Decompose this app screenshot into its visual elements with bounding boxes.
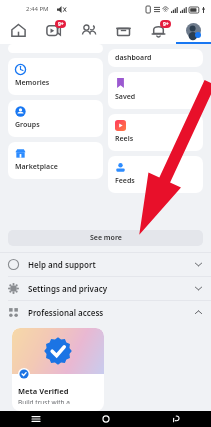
button[interactable]: Friends	[71, 18, 106, 44]
staticText: Groups	[15, 120, 40, 130]
button[interactable]: Home	[71, 411, 141, 427]
button[interactable]: Feeds	[108, 156, 203, 193]
button[interactable]: Marketplace	[8, 142, 103, 179]
staticText: Memories	[15, 78, 50, 88]
staticText: 2:44 PM	[26, 5, 49, 13]
staticText: 9+	[163, 21, 169, 28]
staticText: 9+	[58, 21, 64, 28]
button[interactable]: Meta Verified	[12, 328, 104, 411]
staticText: dashboard	[115, 53, 152, 63]
button[interactable]: Home	[0, 18, 36, 44]
staticText: Marketplace	[15, 162, 58, 172]
button[interactable]: dashboard	[108, 49, 203, 67]
button[interactable]: Notifications	[141, 18, 176, 44]
staticText: See more	[90, 233, 122, 243]
button[interactable]: Marketplace	[106, 18, 141, 44]
button[interactable]: Reels	[108, 114, 203, 151]
button[interactable]: Groups	[8, 100, 103, 137]
staticText: Feeds	[115, 176, 135, 186]
button[interactable]: Video	[36, 18, 71, 44]
button[interactable]: Menu	[176, 18, 211, 44]
staticText: Saved	[115, 92, 136, 102]
staticText: Professional access	[28, 307, 194, 318]
staticText: Help and support	[28, 259, 194, 270]
staticText: Settings and privacy	[28, 283, 194, 294]
button[interactable]: Memories	[8, 58, 103, 95]
button[interactable]: See more	[8, 230, 203, 246]
staticText: Reels	[115, 134, 134, 144]
button[interactable]: Saved	[108, 72, 203, 109]
button[interactable]: Help and support	[0, 253, 211, 276]
staticText: Build trust with a verified badge.	[18, 398, 70, 404]
staticText: Meta Verified	[18, 386, 69, 396]
button[interactable]: Back	[141, 411, 211, 427]
button[interactable]: Professional access	[0, 301, 211, 324]
button[interactable]: Recent apps	[0, 411, 71, 427]
button[interactable]: Settings and privacy	[0, 277, 211, 300]
